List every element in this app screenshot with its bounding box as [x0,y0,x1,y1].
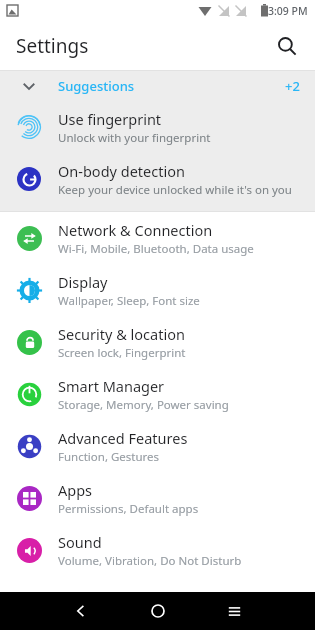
staticText: Display [58,272,108,292]
staticText: Sound [58,532,102,552]
button[interactable]: Network & Connection [0,212,315,264]
button[interactable]: Home [119,592,196,630]
button[interactable]: Suggestions [0,71,315,101]
staticText: Permissions, Default apps [58,501,199,517]
button[interactable]: Advanced Features [0,420,315,472]
staticText: Storage, Memory, Power saving [58,397,229,413]
staticText: Wallpaper, Sleep, Font size [58,293,200,309]
staticText: Settings [16,33,89,59]
button[interactable]: Security & location [0,316,315,368]
staticText: Network & Connection [58,220,213,240]
staticText: Security & location [58,324,185,344]
staticText: +2 [285,77,300,95]
staticText: Use fingerprint [58,109,162,129]
button[interactable]: Apps [0,472,315,524]
button[interactable]: Smart Manager [0,368,315,420]
button[interactable]: Display [0,264,315,316]
staticText: Apps [58,480,93,500]
staticText: Unlock with your fingerprint [58,130,211,146]
staticText: Keep your device unlocked while it's on … [58,182,292,198]
staticText: Volume, Vibration, Do Not Disturb [58,553,242,569]
staticText: Advanced Features [58,428,188,448]
staticText: Function, Gestures [58,449,160,465]
button[interactable]: Back [42,592,119,630]
button[interactable]: Recent apps [196,592,273,630]
button[interactable]: Search [269,28,305,64]
button[interactable]: Sound [0,524,315,576]
staticText: Wi-Fi, Mobile, Bluetooth, Data usage [58,241,254,257]
staticText: Screen lock, Fingerprint [58,345,186,361]
staticText: On-body detection [58,161,185,181]
button[interactable]: On-body detection [0,153,315,205]
staticText: 3:09 PM [268,4,308,18]
button[interactable]: Use fingerprint [0,101,315,153]
staticText: Smart Manager [58,376,165,396]
staticText: Suggestions [58,77,135,95]
